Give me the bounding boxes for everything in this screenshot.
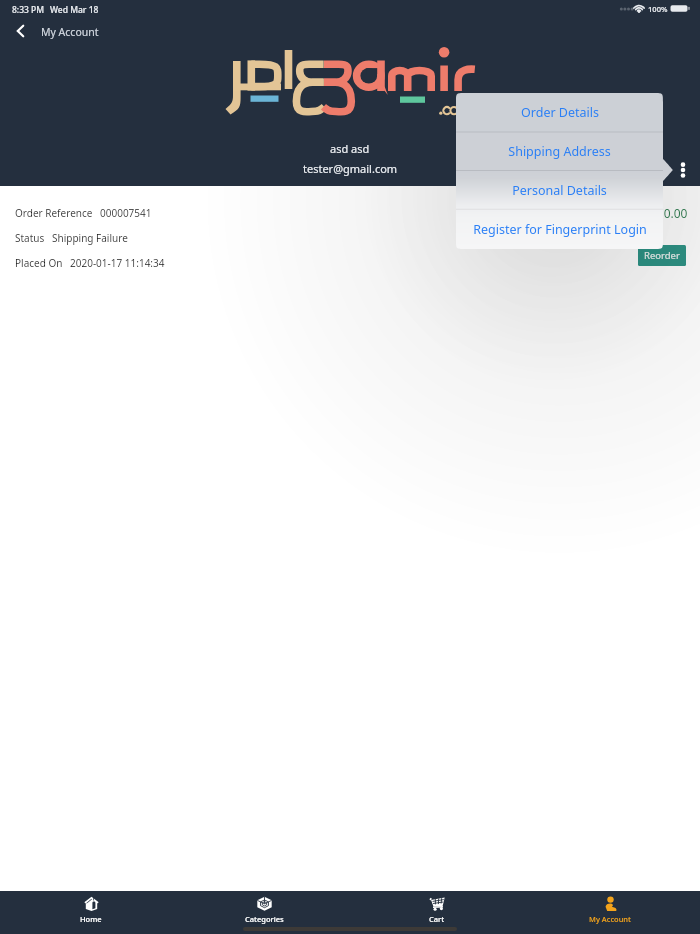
staticText: 000007541 <box>100 206 152 220</box>
staticText: Order Details <box>521 104 599 121</box>
staticText: 2020-01-17 11:14:34 <box>70 256 165 270</box>
button[interactable]: Personal Details <box>456 171 663 210</box>
button[interactable]: More options <box>670 156 696 185</box>
button[interactable]: Order Details <box>456 93 663 132</box>
staticText: asd asd <box>330 141 370 156</box>
button[interactable]: Categories <box>216 891 312 927</box>
staticText: Wed Mar 18 <box>50 4 99 16</box>
staticText: My Account <box>589 914 631 924</box>
button[interactable]: Reorder <box>638 245 686 266</box>
staticText: Home <box>80 914 102 924</box>
staticText: My Account <box>41 25 99 39</box>
staticText: Order Reference <box>15 206 93 220</box>
staticText: Shipping Failure <box>52 231 128 245</box>
staticText: 8:33 PM <box>12 4 45 16</box>
button[interactable]: Home <box>43 891 139 927</box>
staticText: Shipping Address <box>508 143 611 160</box>
staticText: Reorder <box>644 249 680 262</box>
button[interactable]: Register for Fingerprint Login <box>456 210 663 249</box>
button[interactable]: Cart <box>389 891 485 927</box>
staticText: Personal Details <box>512 182 607 199</box>
staticText: Cart <box>429 914 445 924</box>
staticText: Categories <box>245 914 284 924</box>
staticText: 100% <box>648 4 668 14</box>
button[interactable]: Back <box>8 18 34 44</box>
button[interactable]: My Account <box>562 891 658 927</box>
button[interactable]: Shipping Address <box>456 132 663 171</box>
staticText: Register for Fingerprint Login <box>473 221 647 238</box>
staticText: EGP 70.00 <box>631 205 688 221</box>
staticText: Status <box>15 231 45 245</box>
staticText: Placed On <box>15 256 63 270</box>
staticText: tester@gmail.com <box>303 161 398 176</box>
